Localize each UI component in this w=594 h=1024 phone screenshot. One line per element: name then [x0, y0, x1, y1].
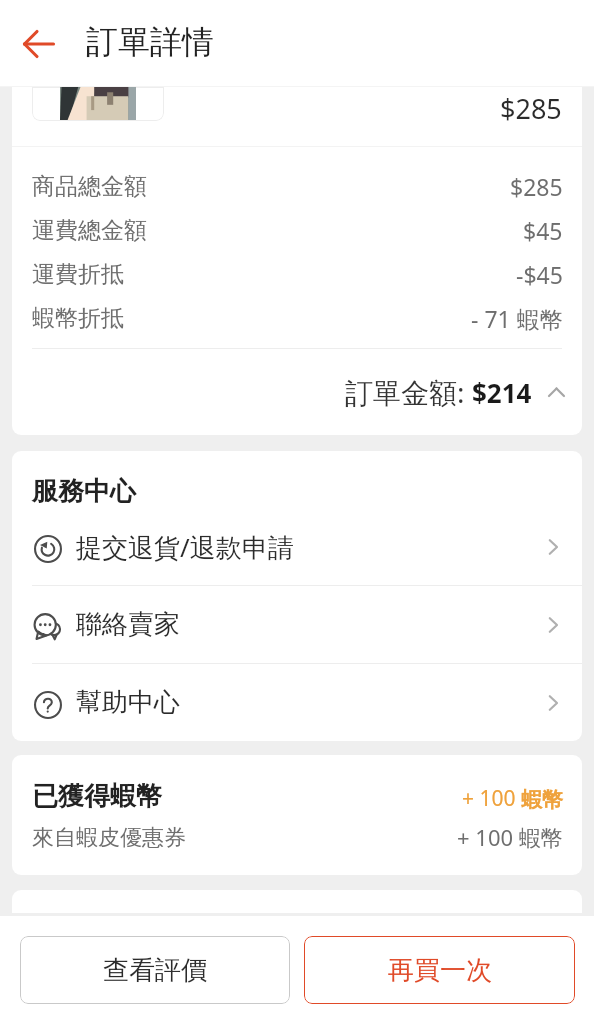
button[interactable]: 訂單金額: [12, 349, 582, 435]
staticText: 服務中心 [32, 475, 136, 508]
staticText: $214 [472, 375, 532, 410]
button[interactable]: 提交退貨/退款申請 [32, 508, 563, 585]
staticText: 訂單詳情 [86, 22, 214, 62]
staticText: 蝦幣折抵 [32, 304, 124, 333]
staticText: 再買一次 [388, 954, 492, 987]
button[interactable]: Back [15, 20, 63, 68]
staticText: - 71 蝦幣 [471, 303, 563, 334]
staticText: 商品總金額 [32, 172, 147, 201]
button[interactable]: $285 [12, 87, 582, 146]
staticText: 已獲得蝦幣 [32, 780, 162, 813]
staticText: $285 [500, 90, 562, 127]
button[interactable]: 幫助中心 [32, 664, 563, 741]
staticText: 提交退貨/退款申請 [76, 529, 294, 565]
staticText: 聯絡賣家 [76, 608, 180, 641]
staticText: 運費折抵 [32, 260, 124, 289]
staticText: 蝦幣 [521, 787, 563, 813]
button[interactable]: 已獲得蝦幣 [12, 755, 582, 852]
staticText: 查看評價 [103, 954, 207, 987]
staticText: $285 [510, 171, 563, 202]
button[interactable]: 聯絡賣家 [32, 586, 563, 663]
staticText: -$45 [516, 259, 563, 290]
staticText: 訂單金額: [345, 373, 472, 411]
button[interactable]: 查看評價 [20, 936, 290, 1004]
staticText: 運費總金額 [32, 216, 147, 245]
staticText: 幫助中心 [76, 686, 180, 719]
staticText: $45 [523, 215, 563, 246]
staticText: + 100 [462, 784, 521, 813]
button[interactable]: 再買一次 [304, 936, 575, 1004]
staticText: 來自蝦皮優惠券 [32, 824, 186, 852]
staticText: + 100 蝦幣 [457, 822, 563, 852]
